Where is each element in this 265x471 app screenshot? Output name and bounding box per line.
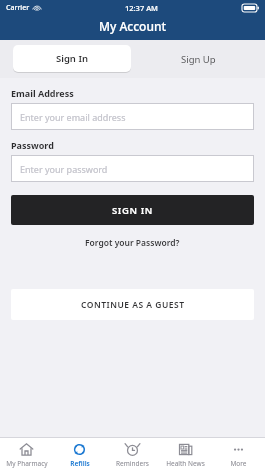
staticText: Health News [166,459,205,468]
staticText: 12:37 AM [125,3,158,13]
staticText: CONTINUE AS A GUEST [81,299,185,311]
staticText: Carrier [6,3,30,13]
staticText: SIGN IN [112,204,153,217]
button[interactable]: CONTINUE AS A GUEST [11,289,254,320]
staticText: Sign In [56,52,88,65]
button[interactable]: Forgot your Password? [11,237,254,249]
staticText: Enter your password [20,163,108,175]
button[interactable]: Reminders [106,438,159,471]
staticText: Refills [70,459,90,468]
staticText: Sign Up [181,53,216,66]
staticText: Reminders [116,459,149,468]
button[interactable]: Health News [159,438,212,471]
button[interactable]: Enter your password [11,155,254,182]
staticText: My Account [99,18,167,34]
button[interactable]: Sign Up [132,40,265,78]
staticText: Enter your email address [20,111,126,123]
staticText: More [230,459,247,468]
staticText: My Pharmacy [6,459,48,468]
staticText: Password [11,139,54,151]
staticText: Forgot your Password? [85,237,180,249]
button[interactable]: Sign In [13,45,131,72]
button[interactable]: Enter your email address [11,103,254,130]
button[interactable]: My Pharmacy [0,438,53,471]
staticText: Email Address [11,87,74,99]
button[interactable]: Refills [53,438,106,471]
button[interactable]: More [212,438,265,471]
button[interactable]: SIGN IN [11,195,254,225]
